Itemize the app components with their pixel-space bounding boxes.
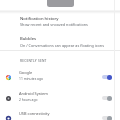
staticText: Android System	[19, 91, 48, 96]
staticText: On / Conversations can appear as floatin…	[20, 43, 104, 48]
staticText: RECENTLY SENT	[20, 59, 47, 63]
staticText: Show recent and snoozed notifications	[20, 22, 88, 27]
staticText: Notification history	[20, 16, 59, 22]
button[interactable]: Toggle USB connectivity notifications	[102, 113, 112, 120]
button[interactable]: USB connectivity	[0, 108, 120, 120]
staticText: USB connectivity	[19, 111, 50, 116]
button[interactable]: Notification history	[0, 14, 120, 28]
button[interactable]: Toggle Android System notifications	[102, 93, 112, 103]
button[interactable]: Bubbles	[0, 34, 120, 49]
button[interactable]: Toggle Google notifications	[102, 72, 112, 82]
staticText: 2 hours ago	[19, 97, 38, 101]
staticText: Bubbles	[20, 36, 37, 42]
button[interactable]: Google	[0, 67, 120, 87]
staticText: Google	[19, 70, 33, 75]
staticText: 11 minutes ago	[19, 76, 43, 80]
button[interactable]: Android System	[0, 88, 120, 108]
